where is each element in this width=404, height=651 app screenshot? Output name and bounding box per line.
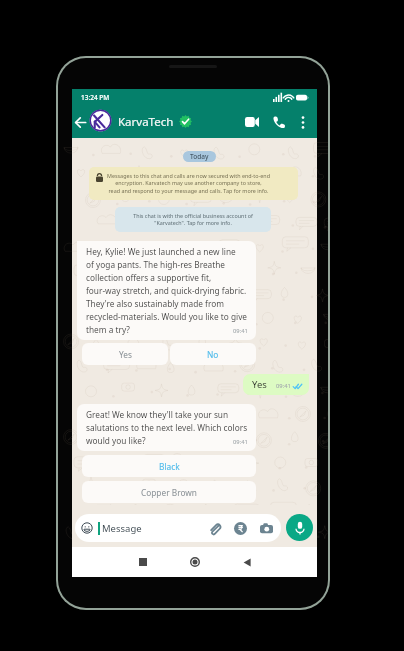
- button[interactable]: Home: [183, 550, 207, 574]
- staticText: No: [207, 349, 219, 360]
- staticText: Yes: [119, 349, 132, 360]
- staticText: KarvaTech: [118, 114, 174, 130]
- button[interactable]: Back: [235, 550, 259, 574]
- staticText: Great! We know they'll take your sun sal…: [86, 409, 248, 446]
- staticText: Message: [102, 522, 142, 535]
- button[interactable]: Call: [268, 111, 290, 133]
- button[interactable]: Back: [73, 115, 87, 129]
- staticText: Black: [159, 461, 180, 472]
- button[interactable]: Attach: [207, 521, 221, 535]
- button[interactable]: Yes: [82, 343, 168, 365]
- staticText: 13:24 PM: [81, 93, 110, 102]
- button[interactable]: Video call: [241, 111, 263, 133]
- staticText: Yes: [252, 378, 267, 391]
- button[interactable]: Record voice message: [286, 514, 313, 541]
- button[interactable]: Message: [81, 514, 273, 542]
- button[interactable]: Copper Brown: [82, 481, 256, 503]
- staticText: 09:41: [233, 438, 248, 446]
- button[interactable]: More options: [293, 112, 313, 132]
- staticText: Messages to this chat and calls are now …: [107, 172, 270, 195]
- button[interactable]: Recent apps: [131, 550, 155, 574]
- staticText: 09:41: [233, 327, 248, 335]
- staticText: Copper Brown: [141, 487, 197, 498]
- staticText: Hey, Kylie! We just launched a new line …: [86, 246, 248, 335]
- button[interactable]: Payments: [233, 521, 247, 535]
- staticText: Today: [190, 152, 209, 161]
- staticText: 09:41: [276, 382, 291, 390]
- button[interactable]: Black: [82, 455, 256, 477]
- staticText: This chat is with the official business …: [133, 212, 253, 227]
- button[interactable]: Camera: [259, 521, 273, 535]
- button[interactable]: No: [170, 343, 256, 365]
